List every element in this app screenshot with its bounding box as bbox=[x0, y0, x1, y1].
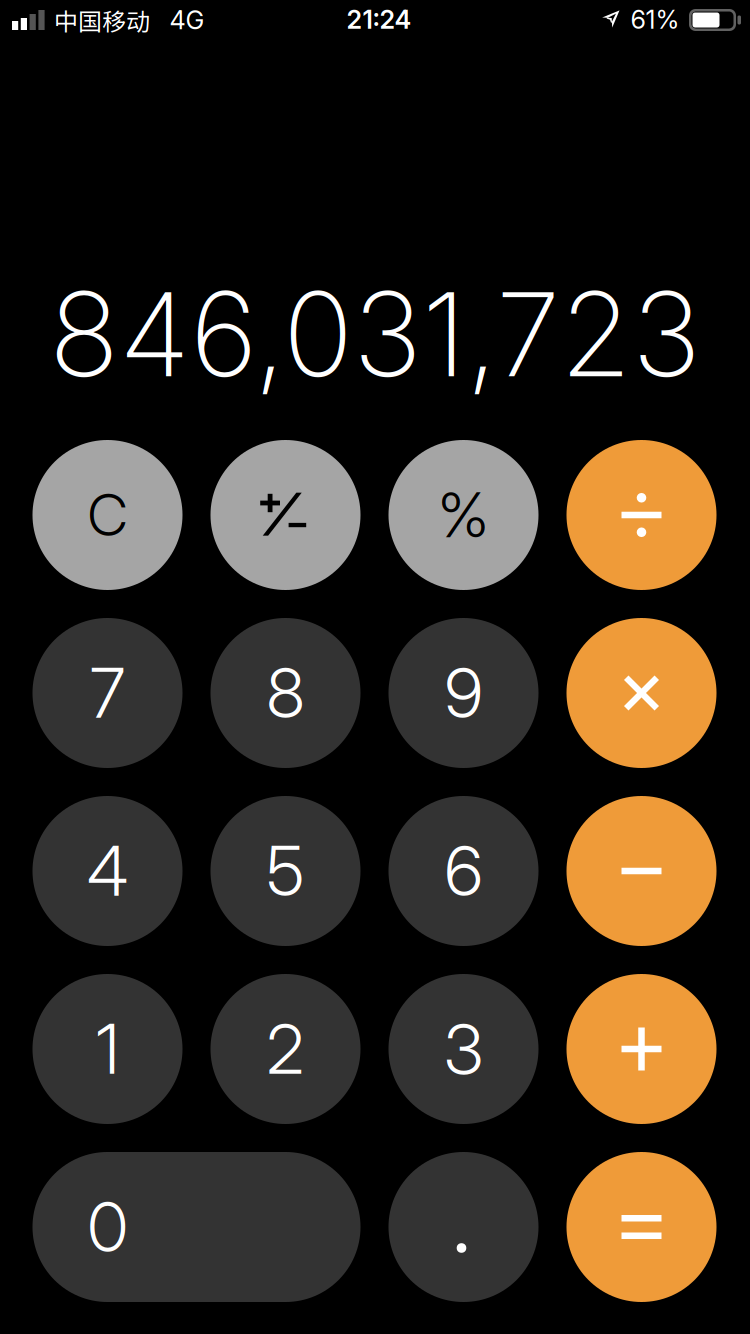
button[interactable]: Decimal point bbox=[388, 1152, 538, 1302]
staticText: 8 bbox=[266, 652, 304, 734]
staticText: 61% bbox=[630, 4, 679, 35]
button[interactable]: Plus minus bbox=[210, 440, 360, 590]
staticText: 中国移动 bbox=[54, 3, 150, 37]
button[interactable]: 8 bbox=[210, 618, 360, 768]
staticText: % bbox=[438, 478, 489, 552]
button[interactable]: Plus bbox=[566, 974, 716, 1124]
staticText: 5 bbox=[266, 830, 304, 912]
button[interactable]: 1 bbox=[32, 974, 182, 1124]
button[interactable]: Equals bbox=[566, 1152, 716, 1302]
button[interactable]: 9 bbox=[388, 618, 538, 768]
button[interactable]: 7 bbox=[32, 618, 182, 768]
staticText: 846,031,723 bbox=[49, 264, 701, 404]
button[interactable]: Divide bbox=[566, 440, 716, 590]
staticText: 3 bbox=[444, 1008, 483, 1090]
button[interactable]: 5 bbox=[210, 796, 360, 946]
staticText: 6 bbox=[444, 830, 482, 912]
staticText: 7 bbox=[90, 652, 125, 734]
staticText: 9 bbox=[444, 652, 482, 734]
staticText: C bbox=[87, 480, 127, 550]
button[interactable]: 0 bbox=[32, 1152, 360, 1302]
staticText: 1 bbox=[96, 1008, 119, 1090]
button[interactable]: Minus bbox=[566, 796, 716, 946]
button[interactable]: % bbox=[388, 440, 538, 590]
button[interactable]: 3 bbox=[388, 974, 538, 1124]
button[interactable]: Multiply bbox=[566, 618, 716, 768]
staticText: 4G bbox=[169, 5, 204, 35]
button[interactable]: 4 bbox=[32, 796, 182, 946]
button[interactable]: C bbox=[32, 440, 182, 590]
staticText: 4 bbox=[87, 830, 128, 912]
staticText: 21:24 bbox=[346, 4, 411, 35]
staticText: 0 bbox=[87, 1186, 127, 1268]
button[interactable]: 2 bbox=[210, 974, 360, 1124]
button[interactable]: 6 bbox=[388, 796, 538, 946]
staticText: 2 bbox=[266, 1008, 304, 1090]
